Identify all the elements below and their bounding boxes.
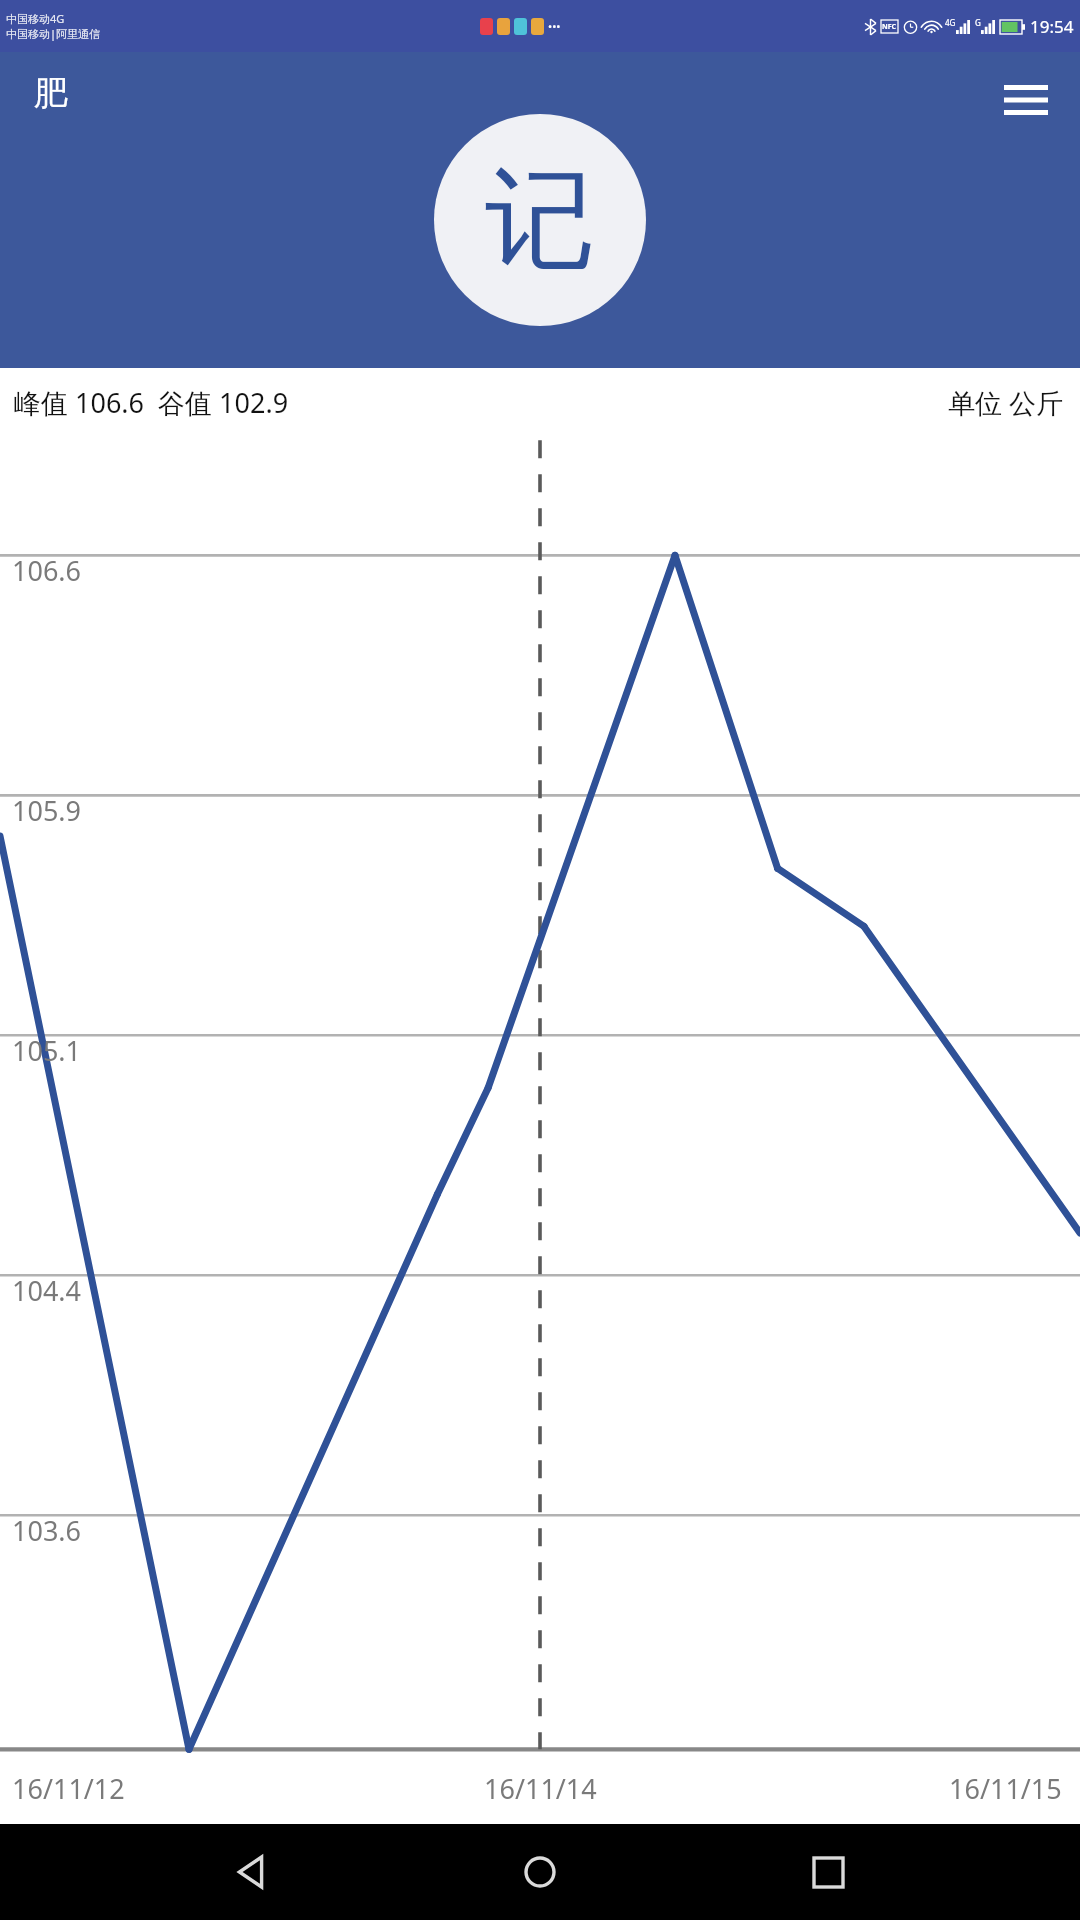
staticText: 105.9: [12, 792, 82, 829]
staticText: 16/11/15: [949, 1770, 1062, 1807]
staticText: 中国移动4G: [6, 11, 65, 26]
staticText: 104.4: [12, 1272, 82, 1309]
staticText: •••: [548, 19, 561, 34]
staticText: 峰值 106.6 谷值 102.9: [14, 384, 289, 421]
staticText: 19:54: [1030, 15, 1074, 38]
staticText: 记: [485, 151, 595, 290]
staticText: 单位 公斤: [948, 384, 1064, 421]
staticText: 16/11/14: [484, 1770, 597, 1807]
staticText: 4G: [945, 17, 956, 28]
button[interactable]: Record weight: [434, 114, 646, 326]
button[interactable]: Back: [216, 1836, 288, 1908]
staticText: 103.6: [12, 1512, 82, 1549]
button[interactable]: Recents: [792, 1836, 864, 1908]
staticText: 106.6: [12, 552, 82, 589]
button[interactable]: Menu: [998, 72, 1054, 128]
staticText: NFC: [882, 22, 897, 32]
staticText: G: [975, 17, 981, 28]
staticText: 肥: [34, 72, 68, 115]
staticText: 105.1: [12, 1032, 82, 1069]
staticText: 16/11/12: [12, 1770, 125, 1807]
button[interactable]: Home: [504, 1836, 576, 1908]
staticText: 中国移动|阿里通信: [6, 26, 101, 41]
